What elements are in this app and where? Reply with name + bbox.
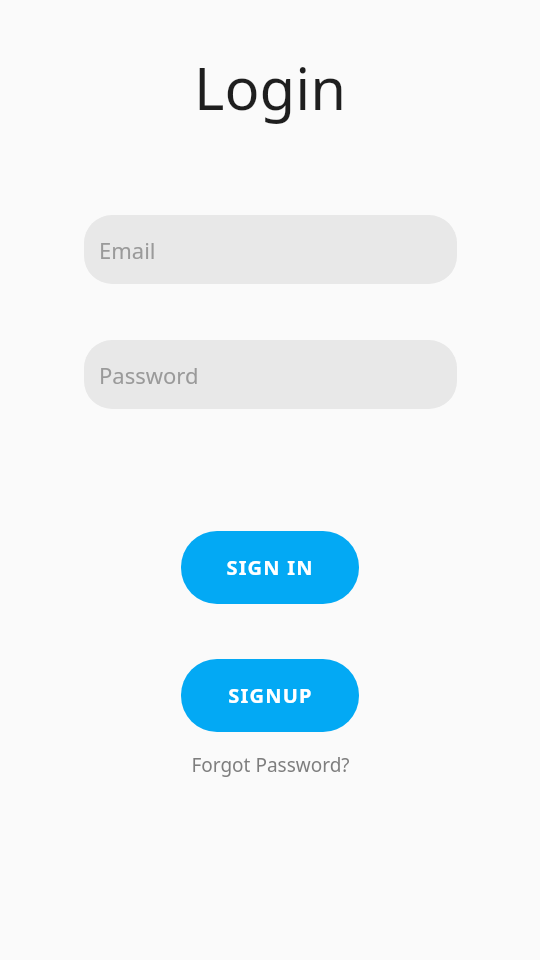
button[interactable]: SIGNUP [181,659,359,732]
button[interactable]: Password [84,340,457,409]
staticText: Forgot Password? [191,752,350,778]
staticText: Login [194,48,346,127]
staticText: Email [99,235,156,265]
button[interactable]: Forgot Password [183,748,358,782]
staticText: Password [99,360,199,390]
button[interactable]: SIGN IN [181,531,359,604]
staticText: SIGN IN [226,554,314,581]
staticText: SIGNUP [228,682,313,709]
button[interactable]: Email [84,215,457,284]
